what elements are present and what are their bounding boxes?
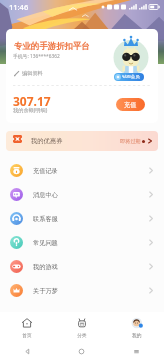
button[interactable]: 编辑资料 [13, 70, 43, 77]
button[interactable]: 我的 [109, 312, 164, 342]
staticText: 307.17 [13, 93, 51, 109]
staticText: 即将过期 [120, 138, 141, 145]
button[interactable]: 我的优惠券 [6, 131, 158, 151]
button[interactable]: 消息中心 [0, 182, 164, 206]
staticText: 联系客服 [33, 215, 58, 223]
button[interactable]: 充值 [116, 98, 145, 111]
staticText: 我的 [132, 332, 142, 338]
button[interactable]: 关于万梦 [0, 278, 164, 302]
staticText: 常见问题 [33, 239, 58, 247]
button[interactable]: 首页 [0, 312, 54, 342]
staticText: 钻石会员 [122, 74, 140, 80]
button[interactable]: Back [0, 342, 54, 360]
staticText: 关于万梦 [33, 287, 58, 295]
button[interactable]: 我的游戏 [0, 254, 164, 278]
staticText: 充值记录 [33, 167, 58, 175]
staticText: 11:46 [9, 2, 29, 12]
button[interactable]: Home [54, 342, 109, 360]
button[interactable]: 充值记录 [0, 158, 164, 182]
staticText: 首页 [22, 332, 32, 338]
staticText: 我的游戏 [33, 263, 58, 271]
other: Home [78, 348, 85, 355]
staticText: 消息中心 [33, 191, 58, 199]
staticText: 分类 [77, 332, 87, 338]
button[interactable]: Profile avatar [112, 29, 152, 81]
button[interactable]: Recent apps [109, 342, 164, 360]
staticText: 手机号: 136****6362 [13, 53, 60, 60]
other: Back [24, 348, 31, 355]
other: Recent apps [133, 348, 140, 355]
staticText: 我的余额(明细) [13, 106, 48, 113]
button[interactable]: 常见问题 [0, 230, 164, 254]
staticText: 充值 [124, 101, 137, 109]
button[interactable]: 钻石会员 [114, 73, 144, 81]
staticText: 我的优惠券 [31, 137, 63, 145]
staticText: 编辑资料 [22, 70, 43, 77]
button[interactable]: 联系客服 [0, 206, 164, 230]
button[interactable]: 分类 [54, 312, 109, 342]
staticText: 专业的手游折扣平台 [14, 41, 90, 52]
